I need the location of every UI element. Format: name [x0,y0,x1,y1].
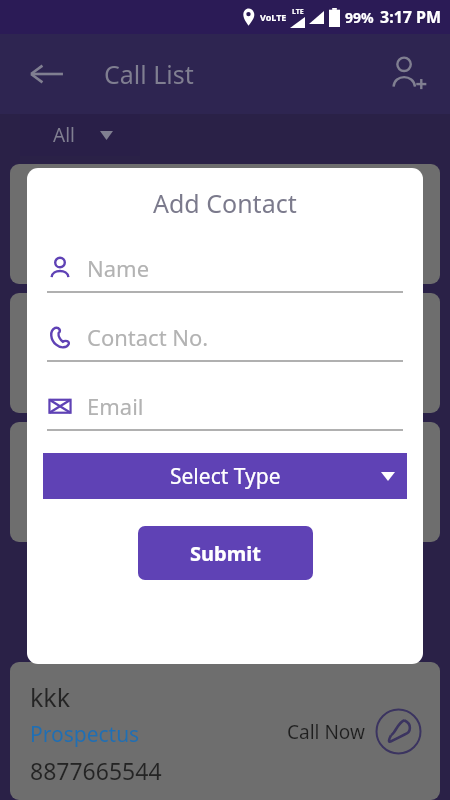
staticText: All [53,122,75,148]
staticText: 9 [26,235,39,264]
staticText: Add Contact [153,186,297,220]
staticText: k [26,303,39,334]
button[interactable]: Contact No. [47,322,403,362]
staticText: Select Type [170,462,281,491]
button[interactable]: Select Type [43,453,407,499]
staticText: kkk [30,680,71,714]
staticText: C [26,336,39,362]
staticText: Email [87,391,144,421]
staticText: 3:17 PM [380,6,442,28]
staticText: 8877665544 [30,755,162,786]
button[interactable]: P [10,164,440,284]
button[interactable]: k [10,422,440,542]
button[interactable]: Name [47,253,403,293]
button[interactable]: All [20,114,140,156]
button[interactable]: k [10,293,440,413]
button[interactable]: Add contact [386,53,428,95]
staticText: Prospectus [30,720,140,749]
staticText: 99% [345,8,374,27]
button[interactable]: Email [47,391,403,431]
staticText: Submit [190,540,261,567]
staticText: Contact No. [87,322,209,352]
staticText: P [26,465,38,491]
staticText: k [26,432,39,463]
staticText: P [26,174,40,205]
staticText: Name [87,253,150,283]
staticText: Call Now [287,719,365,745]
staticText: Call List [104,57,194,91]
staticText: LTE [292,7,304,17]
staticText: P [26,207,38,233]
button[interactable]: kkk [10,662,440,800]
button[interactable]: Back [28,55,66,93]
staticText: 9 [26,364,39,393]
button[interactable]: Submit [138,526,313,580]
staticText: VoLTE [260,11,287,23]
staticText: 8 [26,493,39,522]
button[interactable]: Call Now [287,708,422,755]
